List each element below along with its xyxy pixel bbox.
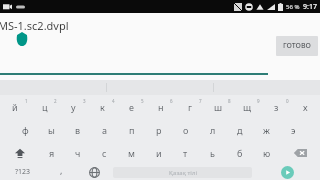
button[interactable]: к: [88, 95, 117, 118]
staticText: 6: [170, 98, 173, 104]
staticText: с: [102, 147, 107, 159]
button[interactable]: и: [145, 141, 172, 164]
button[interactable]: ГОТОВО: [276, 36, 318, 56]
staticText: а: [102, 124, 108, 136]
button[interactable]: Қазақ тілі: [113, 167, 252, 178]
staticText: 2: [54, 98, 57, 104]
button[interactable]: [254, 164, 320, 180]
staticText: ы: [48, 124, 55, 136]
staticText: е: [129, 101, 134, 113]
button[interactable]: б: [226, 141, 253, 164]
staticText: ц: [42, 101, 48, 113]
button[interactable]: ,: [45, 164, 78, 180]
button[interactable]: м: [118, 141, 145, 164]
staticText: ю: [263, 147, 271, 159]
staticText: ш: [214, 101, 223, 113]
button[interactable]: ц: [30, 95, 59, 118]
button[interactable]: я: [39, 141, 65, 164]
button[interactable]: й: [0, 95, 30, 118]
staticText: 4: [112, 98, 115, 104]
staticText: 8: [228, 98, 231, 104]
button[interactable]: ф: [12, 118, 38, 141]
button[interactable]: о: [172, 118, 199, 141]
staticText: щ: [243, 101, 252, 113]
staticText: 0: [286, 98, 289, 104]
staticText: л: [210, 124, 216, 136]
button[interactable]: ы: [38, 118, 64, 141]
staticText: д: [237, 124, 243, 136]
staticText: 9:17: [303, 2, 317, 12]
staticText: 3: [83, 98, 86, 104]
staticText: т: [183, 147, 188, 159]
staticText: Қазақ тілі: [169, 169, 197, 177]
button[interactable]: с: [91, 141, 118, 164]
button[interactable]: р: [145, 118, 172, 141]
button[interactable]: н: [146, 95, 175, 118]
staticText: ь: [210, 147, 215, 159]
staticText: м: [128, 147, 135, 159]
button[interactable]: ж: [253, 118, 280, 141]
staticText: к: [100, 101, 105, 113]
staticText: ж: [263, 124, 270, 136]
button[interactable]: ю: [253, 141, 280, 164]
button[interactable]: е: [117, 95, 146, 118]
staticText: и: [156, 147, 162, 159]
staticText: з: [274, 101, 279, 113]
staticText: б: [237, 147, 243, 159]
button[interactable]: э: [280, 118, 307, 141]
staticText: в: [75, 124, 81, 136]
button[interactable]: х: [291, 95, 320, 118]
button[interactable]: ш: [204, 95, 233, 118]
staticText: п: [129, 124, 135, 136]
button[interactable]: в: [64, 118, 91, 141]
staticText: 7: [199, 98, 202, 104]
button[interactable]: Change language: [78, 164, 111, 180]
staticText: у: [71, 101, 76, 113]
button[interactable]: д: [226, 118, 253, 141]
staticText: 5: [141, 98, 144, 104]
staticText: ч: [75, 147, 81, 159]
button[interactable]: г: [175, 95, 204, 118]
staticText: 56 %: [286, 3, 300, 11]
staticText: ,: [60, 164, 63, 176]
staticText: г: [188, 101, 192, 113]
staticText: э: [291, 124, 296, 136]
button[interactable]: п: [118, 118, 145, 141]
button[interactable]: Backspace: [280, 141, 320, 164]
button[interactable]: Shift: [0, 141, 39, 164]
staticText: ГОТОВО: [283, 41, 311, 51]
staticText: я: [49, 147, 55, 159]
staticText: 9: [257, 98, 260, 104]
staticText: й: [12, 101, 18, 113]
staticText: о: [183, 124, 189, 136]
button[interactable]: у: [59, 95, 88, 118]
button[interactable]: л: [199, 118, 226, 141]
staticText: х: [303, 101, 308, 113]
staticText: ф: [22, 124, 29, 136]
button[interactable]: а: [91, 118, 118, 141]
staticText: р: [156, 124, 162, 136]
button[interactable]: з: [262, 95, 291, 118]
button[interactable]: ь: [199, 141, 226, 164]
staticText: MS-1.sc2.dvpl: [0, 18, 69, 33]
button[interactable]: ч: [65, 141, 91, 164]
staticText: ?123: [15, 167, 31, 177]
staticText: н: [158, 101, 164, 113]
staticText: 1: [25, 98, 28, 104]
button[interactable]: т: [172, 141, 199, 164]
button[interactable]: щ: [233, 95, 262, 118]
button[interactable]: ?123: [0, 164, 45, 180]
